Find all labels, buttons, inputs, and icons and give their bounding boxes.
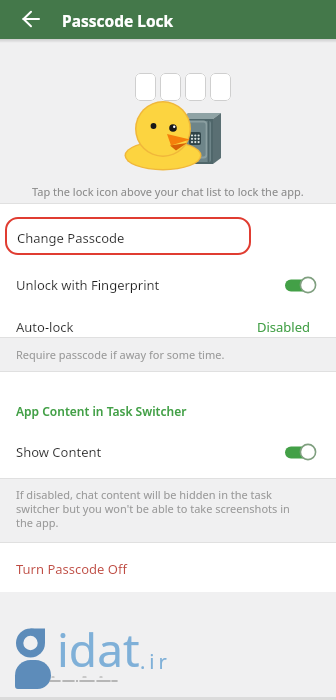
button[interactable]: Auto-lock xyxy=(0,312,336,342)
staticText: Require passcode if away for some time. xyxy=(16,347,225,362)
staticText: App Content in Task Switcher xyxy=(16,403,187,419)
button[interactable]: Change Passcode xyxy=(0,212,336,264)
staticText: Disabled xyxy=(257,318,311,336)
button[interactable]: Turn Passcode Off xyxy=(0,546,336,592)
button[interactable]: Passcode Lock xyxy=(0,0,336,39)
staticText: Tap the lock icon above your chat list t… xyxy=(32,184,304,199)
staticText: Passcode Lock xyxy=(62,10,174,31)
button[interactable]: Show Content xyxy=(0,430,336,474)
button[interactable]: Unlock with Fingerprint xyxy=(0,262,336,308)
staticText: If disabled, chat content will be hidden… xyxy=(16,487,290,530)
staticText: Show Content xyxy=(16,443,102,461)
staticText: Change Passcode xyxy=(17,229,125,247)
staticText: .ir xyxy=(140,648,171,675)
staticText: idat xyxy=(57,618,140,681)
staticText: Unlock with Fingerprint xyxy=(16,276,160,294)
staticText: Turn Passcode Off xyxy=(16,560,127,578)
staticText: Auto-lock xyxy=(16,318,74,336)
